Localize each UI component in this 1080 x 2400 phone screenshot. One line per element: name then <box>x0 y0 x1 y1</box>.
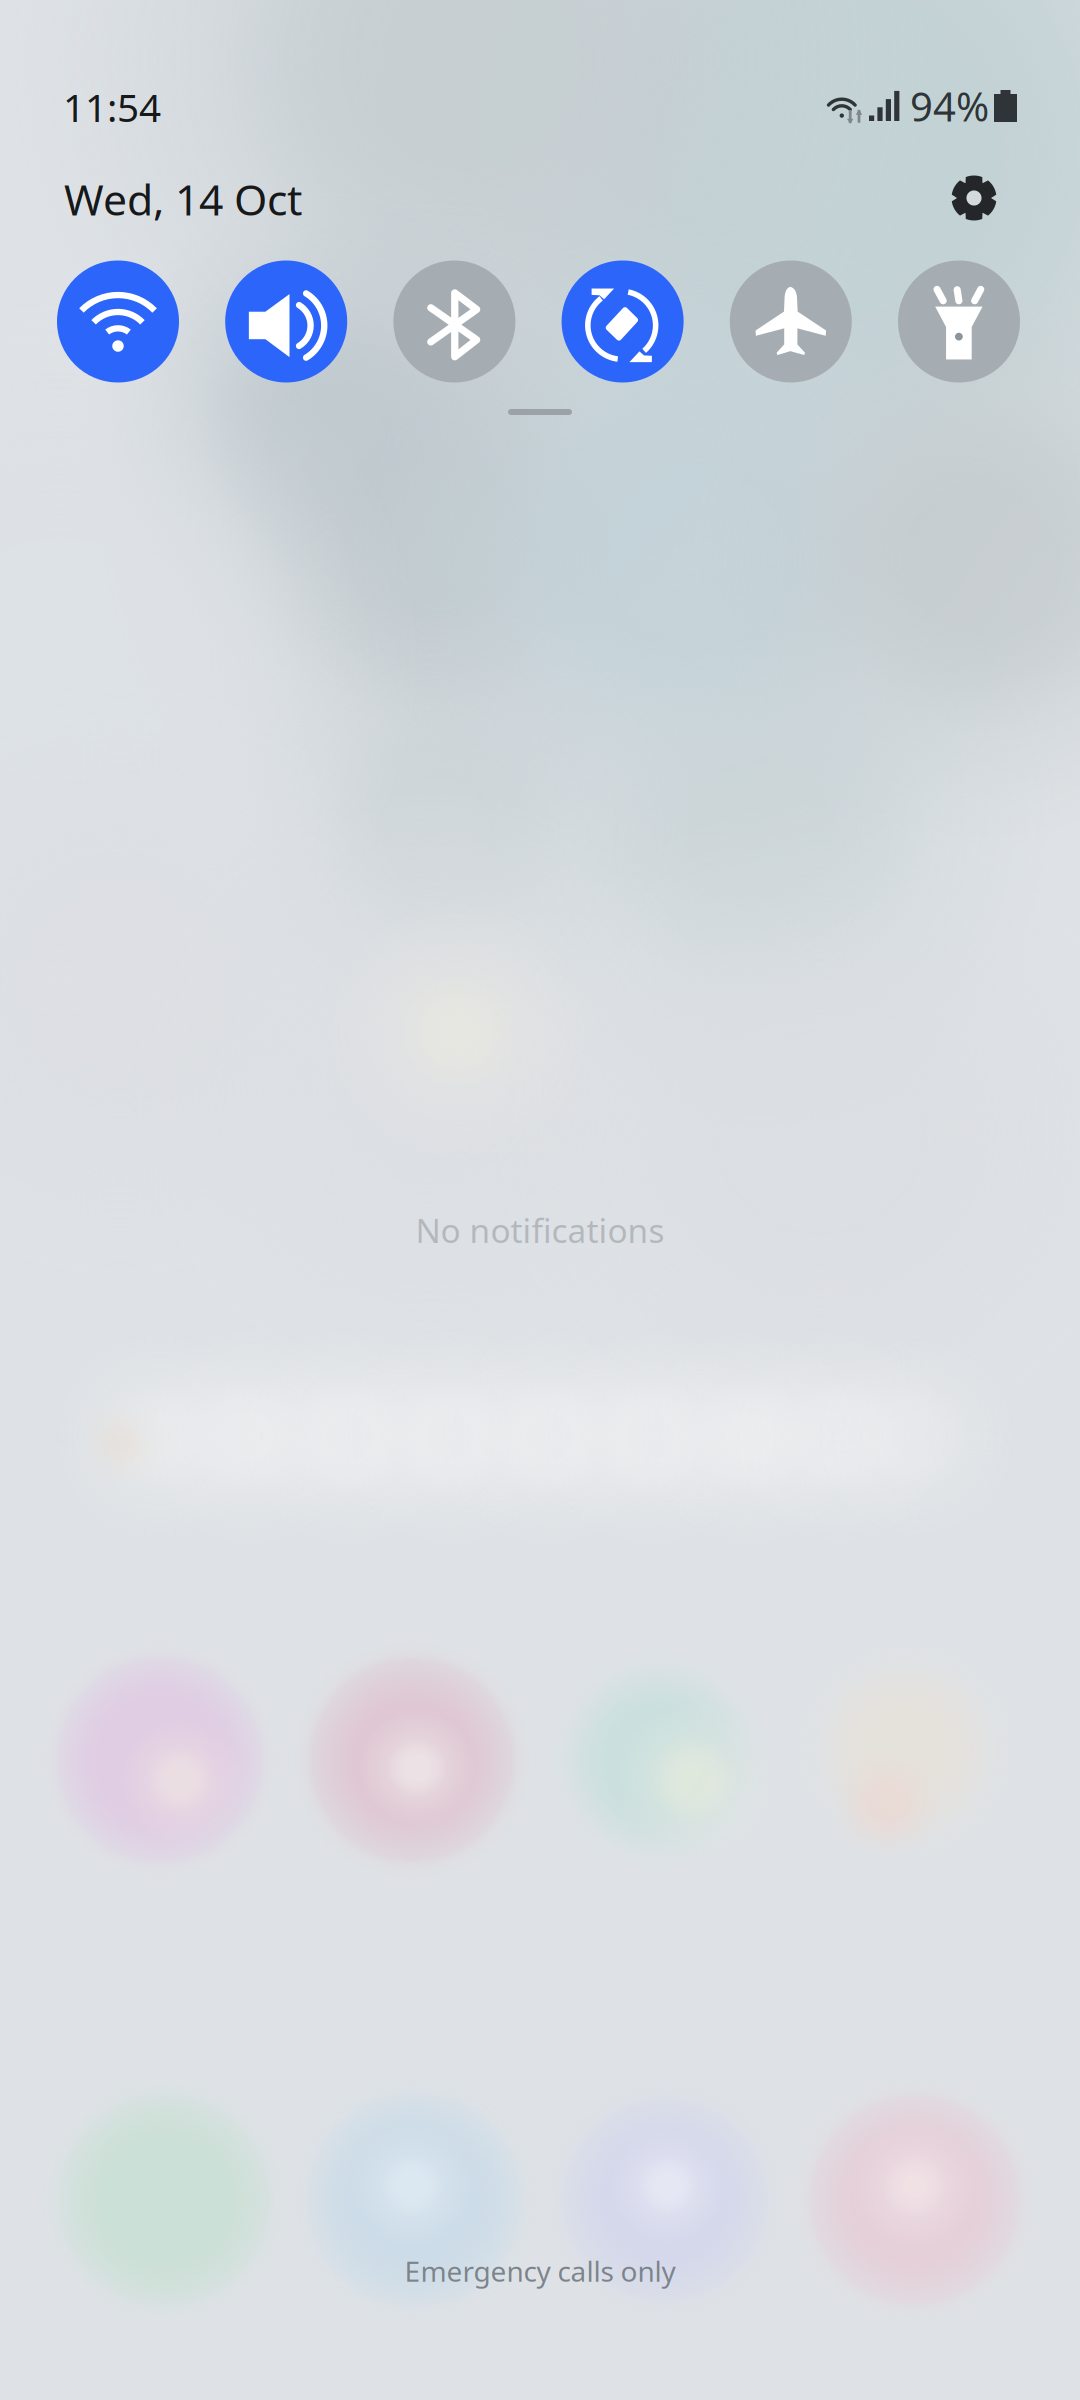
staticText: Wed, 14 Oct <box>64 171 302 227</box>
staticText: 94% <box>910 79 989 132</box>
button[interactable]: Sound <box>225 260 347 382</box>
button[interactable]: Wi-Fi <box>57 260 179 382</box>
staticText: 11:54 <box>63 81 161 133</box>
button[interactable]: Auto rotate <box>562 260 684 382</box>
staticText: No notifications <box>415 1208 664 1252</box>
button[interactable]: Expand quick settings <box>460 392 620 432</box>
button[interactable]: Flight mode <box>730 260 852 382</box>
button[interactable]: Bluetooth <box>393 260 515 382</box>
staticText: Emergency calls only <box>404 2252 675 2290</box>
button[interactable]: Settings <box>926 150 1022 246</box>
button[interactable]: Flashlight <box>898 260 1020 382</box>
